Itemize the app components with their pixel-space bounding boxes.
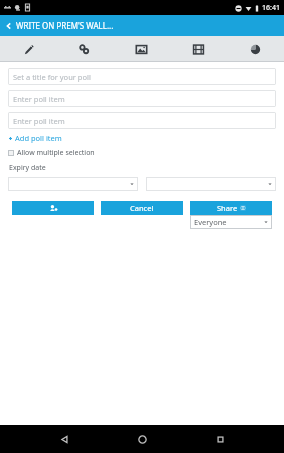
button[interactable]: Back: [0, 15, 284, 36]
button[interactable]: Back: [50, 425, 78, 453]
button[interactable]: Set a title for your poll: [8, 68, 276, 85]
other: Back: [5, 22, 13, 30]
button[interactable]: Poll: [227, 36, 284, 62]
staticText: Enter poll item: [13, 116, 65, 126]
button[interactable]: Cancel: [101, 201, 183, 215]
button[interactable]: Enter poll item: [8, 112, 276, 129]
button[interactable]: Home: [128, 425, 156, 453]
button[interactable]: Text: [0, 36, 56, 62]
button[interactable]: Enter poll item: [8, 90, 276, 107]
button[interactable]: Recents: [206, 425, 234, 453]
staticText: Add poll item: [15, 133, 62, 143]
button[interactable]: Photo: [113, 36, 170, 62]
button[interactable]: Select date: [146, 177, 276, 191]
button[interactable]: Link: [56, 36, 113, 62]
button[interactable]: Select date: [8, 177, 138, 191]
button[interactable]: Everyone: [190, 215, 272, 229]
staticText: 16:41: [262, 3, 280, 13]
staticText: Expiry date: [9, 163, 46, 173]
staticText: Allow multiple selection: [17, 148, 95, 158]
staticText: Everyone: [194, 217, 227, 227]
button[interactable]: Add poll item: [8, 133, 62, 143]
button[interactable]: Allow multiple selection: [8, 148, 95, 158]
staticText: Enter poll item: [13, 94, 65, 104]
staticText: Share: [217, 203, 238, 213]
button[interactable]: Share: [190, 201, 272, 215]
button[interactable]: Video: [170, 36, 227, 62]
button[interactable]: Add people: [12, 201, 94, 215]
staticText: Cancel: [130, 203, 154, 213]
staticText: WRITE ON PREM'S WALL...: [16, 20, 114, 31]
staticText: Set a title for your poll: [13, 72, 91, 82]
